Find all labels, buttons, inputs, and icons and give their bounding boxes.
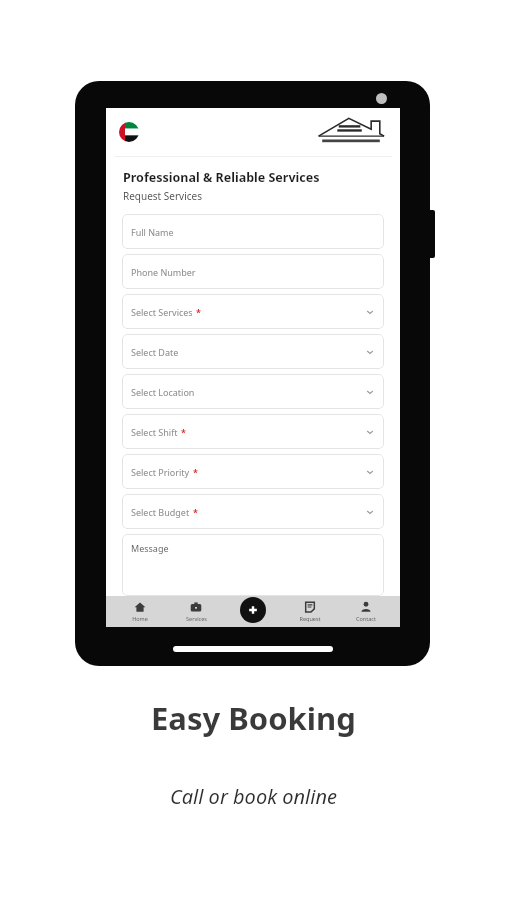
- staticText: Request: [299, 615, 321, 622]
- staticText: Select Services: [131, 306, 193, 318]
- staticText: Professional & Reliable Services: [123, 169, 320, 186]
- button[interactable]: Select Budget: [122, 494, 384, 529]
- button[interactable]: UAE flag: [119, 122, 139, 142]
- staticText: Services: [186, 615, 207, 622]
- button[interactable]: Select Location: [122, 374, 384, 409]
- button[interactable]: Full Name: [122, 214, 384, 249]
- button[interactable]: Add new request: [240, 597, 266, 623]
- button[interactable]: Contact: [343, 598, 389, 625]
- button[interactable]: Phone Number: [122, 254, 384, 289]
- staticText: Request Services: [123, 189, 202, 203]
- staticText: Call or book online: [170, 783, 337, 810]
- staticText: Home: [132, 615, 148, 622]
- button[interactable]: Select Priority: [122, 454, 384, 489]
- staticText: Contact: [356, 615, 376, 622]
- button[interactable]: Request: [287, 598, 333, 625]
- staticText: Select Shift: [131, 426, 178, 438]
- button[interactable]: Select Shift: [122, 414, 384, 449]
- staticText: *: [193, 506, 198, 518]
- staticText: Easy Booking: [151, 697, 356, 739]
- button[interactable]: Home: [117, 598, 163, 625]
- staticText: Select Location: [131, 386, 195, 398]
- staticText: Full Name: [131, 226, 174, 238]
- button[interactable]: Select Date: [122, 334, 384, 369]
- button[interactable]: Services: [173, 598, 219, 625]
- button[interactable]: Facility Technical Services logo: [315, 115, 387, 149]
- staticText: *: [196, 306, 201, 318]
- button[interactable]: Select Services: [122, 294, 384, 329]
- staticText: Select Date: [131, 346, 179, 358]
- staticText: Select Budget: [131, 506, 190, 518]
- staticText: Message: [131, 542, 169, 554]
- staticText: Select Priority: [131, 466, 190, 478]
- staticText: Phone Number: [131, 266, 196, 278]
- staticText: *: [193, 466, 198, 478]
- button[interactable]: Message: [122, 534, 384, 596]
- staticText: *: [181, 426, 186, 438]
